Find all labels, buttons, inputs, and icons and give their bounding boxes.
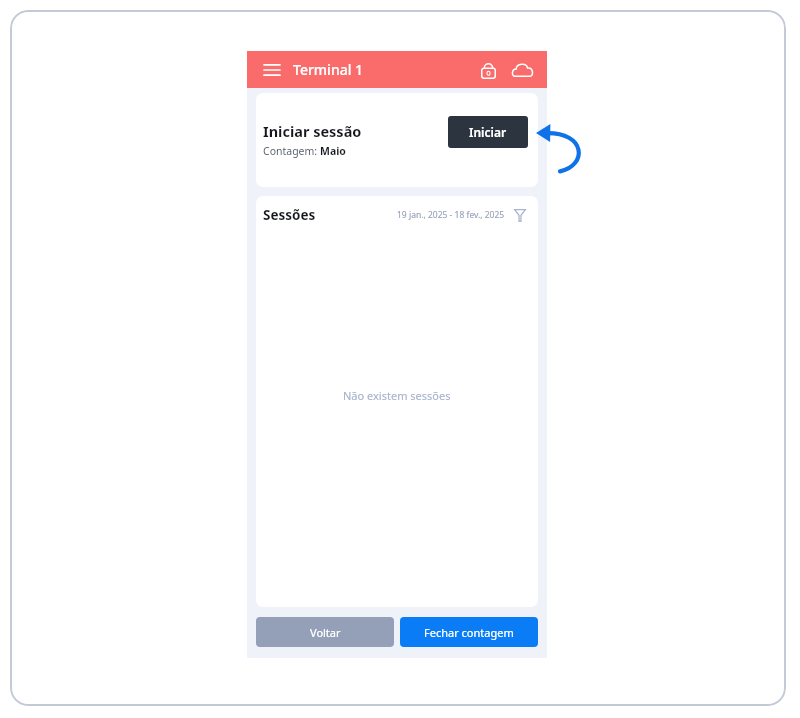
button[interactable]: Fechar contagem (400, 617, 538, 647)
staticText: Terminal 1 (293, 60, 364, 79)
button[interactable]: Terminal 1 (293, 60, 364, 79)
staticText: Voltar (310, 625, 341, 640)
staticText: Fechar contagem (424, 625, 514, 640)
button[interactable]: Voltar (256, 617, 394, 647)
staticText: Não existem sessões (343, 388, 451, 403)
staticText: Iniciar sessão (263, 121, 362, 141)
staticText: 19 jan., 2025 - 18 fev., 2025 (397, 209, 505, 221)
staticText: Iniciar (469, 124, 507, 140)
button[interactable]: Cloud sync (509, 57, 535, 83)
button[interactable]: Menu (259, 57, 285, 83)
staticText: Contagem: (263, 144, 320, 158)
button[interactable]: Lock (475, 57, 501, 83)
button[interactable]: Filter (511, 206, 529, 224)
staticText: Sessões (263, 206, 316, 224)
staticText: Maio (320, 144, 346, 158)
button[interactable]: Iniciar (448, 116, 528, 148)
